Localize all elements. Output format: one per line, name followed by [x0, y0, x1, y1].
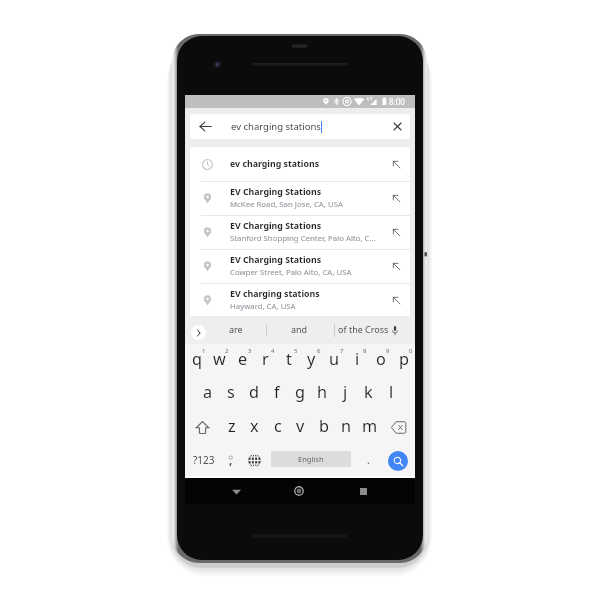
staticText: 2: [225, 347, 229, 355]
staticText: y: [307, 348, 316, 370]
staticText: are: [229, 323, 243, 335]
staticText: u: [329, 348, 340, 370]
button[interactable]: Voice input: [385, 316, 405, 344]
button[interactable]: f: [265, 378, 288, 411]
button[interactable]: Change language: [243, 444, 266, 477]
button[interactable]: d: [242, 378, 265, 411]
button[interactable]: are: [208, 316, 264, 344]
button[interactable]: .: [358, 444, 379, 477]
button[interactable]: l: [380, 378, 403, 411]
button[interactable]: Back: [190, 114, 220, 139]
staticText: ev charging stations: [231, 120, 321, 133]
button[interactable]: a: [196, 378, 219, 411]
button[interactable]: EV charging stations: [190, 283, 410, 317]
staticText: v: [296, 415, 305, 437]
button[interactable]: 4: [254, 344, 277, 378]
button[interactable]: EV Charging Stations: [190, 181, 410, 215]
button[interactable]: of the Cross: [335, 316, 391, 344]
button[interactable]: m: [358, 411, 381, 444]
button[interactable]: EV Charging Stations: [190, 215, 410, 249]
button[interactable]: Recent apps: [347, 478, 379, 504]
button[interactable]: c: [266, 411, 289, 444]
button[interactable]: b: [312, 411, 335, 444]
staticText: McKee Road, San Jose, CA, USA: [230, 199, 343, 210]
button[interactable]: and: [271, 316, 327, 344]
button[interactable]: Use this suggestion: [382, 249, 410, 283]
button[interactable]: Use this suggestion: [382, 283, 410, 317]
button[interactable]: 2: [208, 344, 231, 378]
button[interactable]: 7: [323, 344, 346, 378]
staticText: p: [399, 348, 409, 370]
button[interactable]: 9: [369, 344, 392, 378]
staticText: m: [362, 415, 378, 437]
button[interactable]: Backspace: [381, 411, 415, 444]
staticText: k: [364, 381, 373, 403]
button[interactable]: n: [335, 411, 358, 444]
staticText: EV charging stations: [230, 288, 320, 300]
staticText: 5: [294, 347, 298, 355]
button[interactable]: 8: [346, 344, 369, 378]
staticText: l: [389, 381, 394, 403]
staticText: 9: [386, 347, 390, 355]
staticText: 6: [317, 347, 321, 355]
button[interactable]: 0: [392, 344, 415, 378]
staticText: t: [286, 348, 292, 370]
button[interactable]: 6: [300, 344, 323, 378]
staticText: o: [376, 348, 386, 370]
staticText: a: [203, 381, 213, 403]
staticText: Cowper Street, Palo Alto, CA, USA: [230, 267, 352, 278]
staticText: s: [227, 381, 235, 403]
staticText: h: [317, 381, 328, 403]
button[interactable]: Search: [381, 444, 412, 477]
button[interactable]: s: [219, 378, 242, 411]
staticText: .: [367, 453, 370, 467]
button[interactable]: 5: [277, 344, 300, 378]
button[interactable]: Clear search: [384, 114, 410, 139]
button[interactable]: j: [334, 378, 357, 411]
staticText: Stanford Shopping Center, Palo Alto, C…: [230, 233, 376, 244]
button[interactable]: Use this suggestion: [382, 181, 410, 215]
button[interactable]: k: [357, 378, 380, 411]
staticText: 3: [248, 347, 252, 355]
button[interactable]: h: [311, 378, 334, 411]
staticText: z: [228, 415, 236, 437]
button[interactable]: ev charging stations: [190, 147, 410, 181]
staticText: r: [262, 348, 269, 370]
staticText: d: [249, 381, 259, 403]
staticText: 1: [202, 347, 206, 355]
button[interactable]: z: [220, 411, 243, 444]
staticText: 0: [409, 347, 413, 355]
button[interactable]: 1: [185, 344, 208, 378]
button[interactable]: g: [288, 378, 311, 411]
staticText: ?123: [193, 453, 215, 467]
staticText: e: [238, 348, 248, 370]
staticText: g: [295, 381, 305, 403]
staticText: n: [341, 415, 352, 437]
button[interactable]: [220, 444, 242, 477]
staticText: 4: [271, 347, 275, 355]
button[interactable]: Use this suggestion: [382, 147, 410, 181]
staticText: of the Cross: [338, 323, 389, 335]
staticText: EV Charging Stations: [230, 186, 322, 198]
staticText: j: [343, 381, 348, 403]
staticText: 8: [363, 347, 367, 355]
staticText: ev charging stations: [230, 158, 320, 170]
button[interactable]: More suggestions: [191, 325, 206, 340]
button[interactable]: English: [271, 451, 351, 467]
button[interactable]: ?123: [188, 444, 219, 477]
button[interactable]: EV Charging Stations: [190, 249, 410, 283]
staticText: w: [213, 348, 226, 370]
button[interactable]: v: [289, 411, 312, 444]
button[interactable]: 3: [231, 344, 254, 378]
button[interactable]: Shift: [185, 411, 220, 444]
staticText: Hayward, CA, USA: [230, 301, 296, 312]
button[interactable]: Use this suggestion: [382, 215, 410, 249]
button[interactable]: Back: [220, 478, 252, 504]
staticText: f: [274, 381, 280, 403]
staticText: b: [319, 415, 329, 437]
staticText: EV Charging Stations: [230, 254, 322, 266]
button[interactable]: x: [243, 411, 266, 444]
staticText: EV Charging Stations: [230, 220, 322, 232]
staticText: x: [250, 415, 259, 437]
button[interactable]: Home: [283, 478, 315, 504]
